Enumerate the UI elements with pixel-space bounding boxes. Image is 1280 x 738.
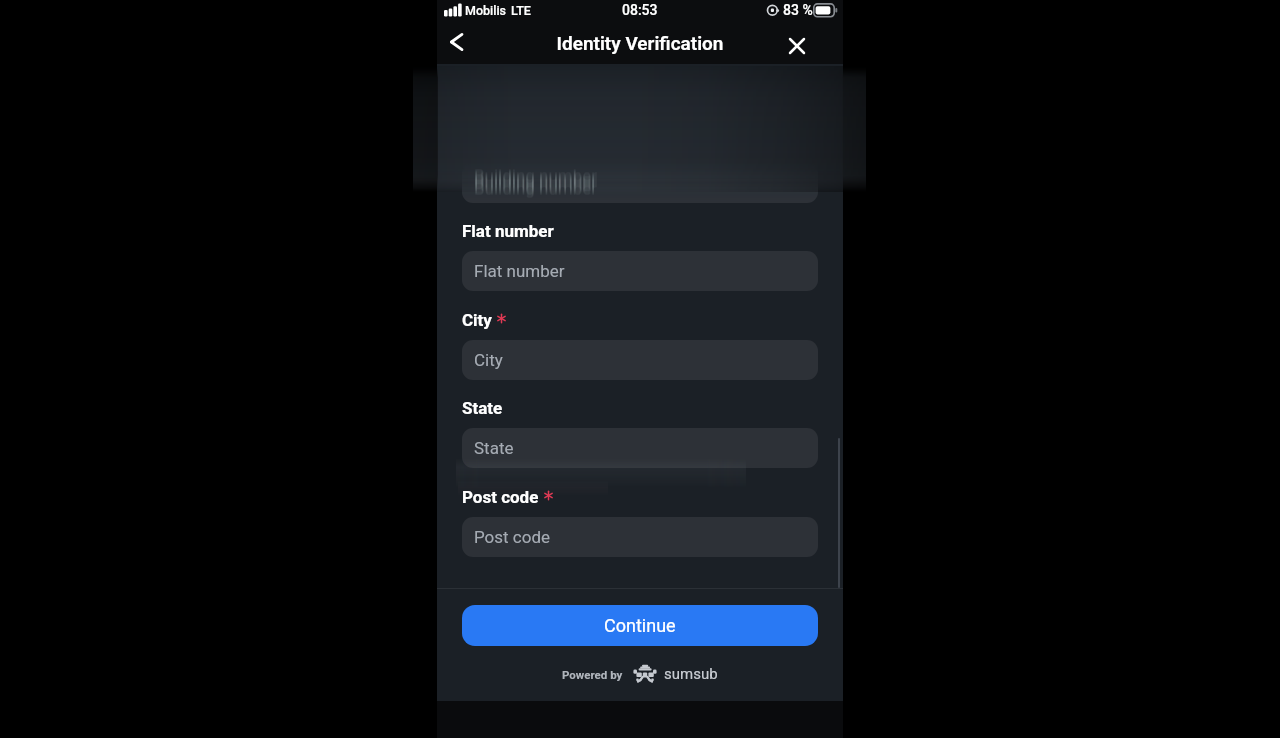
button[interactable]: Post code xyxy=(462,517,818,557)
button[interactable]: City xyxy=(462,340,818,380)
staticText: Building number xyxy=(474,173,598,193)
staticText: Building number xyxy=(474,168,598,188)
staticText: Building number xyxy=(474,176,598,196)
staticText: 83 % xyxy=(783,2,813,18)
staticText: Powered by xyxy=(562,668,623,681)
staticText: sumsub xyxy=(664,665,718,683)
staticText: Building number xyxy=(474,178,598,198)
staticText: Flat number xyxy=(462,221,554,241)
staticText: Building number xyxy=(474,167,598,187)
staticText: Flat number xyxy=(474,261,565,281)
staticText: State xyxy=(462,398,503,418)
staticText: City xyxy=(474,350,503,370)
button[interactable]: State xyxy=(462,428,818,468)
button[interactable]: Building number xyxy=(462,163,818,203)
staticText: Building number xyxy=(474,175,598,195)
staticText: LTE xyxy=(511,3,531,18)
staticText: Continue xyxy=(604,615,676,636)
staticText: Building number xyxy=(474,166,598,186)
staticText: Identity Verification xyxy=(437,32,843,54)
staticText: Post code xyxy=(462,487,539,507)
staticText: Post code xyxy=(474,527,551,547)
staticText: Building number xyxy=(474,169,598,189)
staticText: 08:53 xyxy=(622,2,658,18)
staticText: State xyxy=(474,438,514,458)
button[interactable]: Flat number xyxy=(462,251,818,291)
staticText: Building number xyxy=(474,172,598,192)
button[interactable]: Continue xyxy=(462,605,818,646)
staticText: Building number xyxy=(474,170,598,190)
staticText: City xyxy=(462,310,492,330)
staticText: Building number xyxy=(474,179,598,199)
staticText: Mobilis xyxy=(465,3,507,18)
staticText: Building number xyxy=(474,165,598,185)
staticText: Building number xyxy=(474,174,598,194)
button[interactable]: Back xyxy=(437,20,475,64)
button[interactable]: Close xyxy=(777,25,817,66)
staticText: Building number xyxy=(474,177,598,197)
staticText: Building number xyxy=(474,171,598,191)
